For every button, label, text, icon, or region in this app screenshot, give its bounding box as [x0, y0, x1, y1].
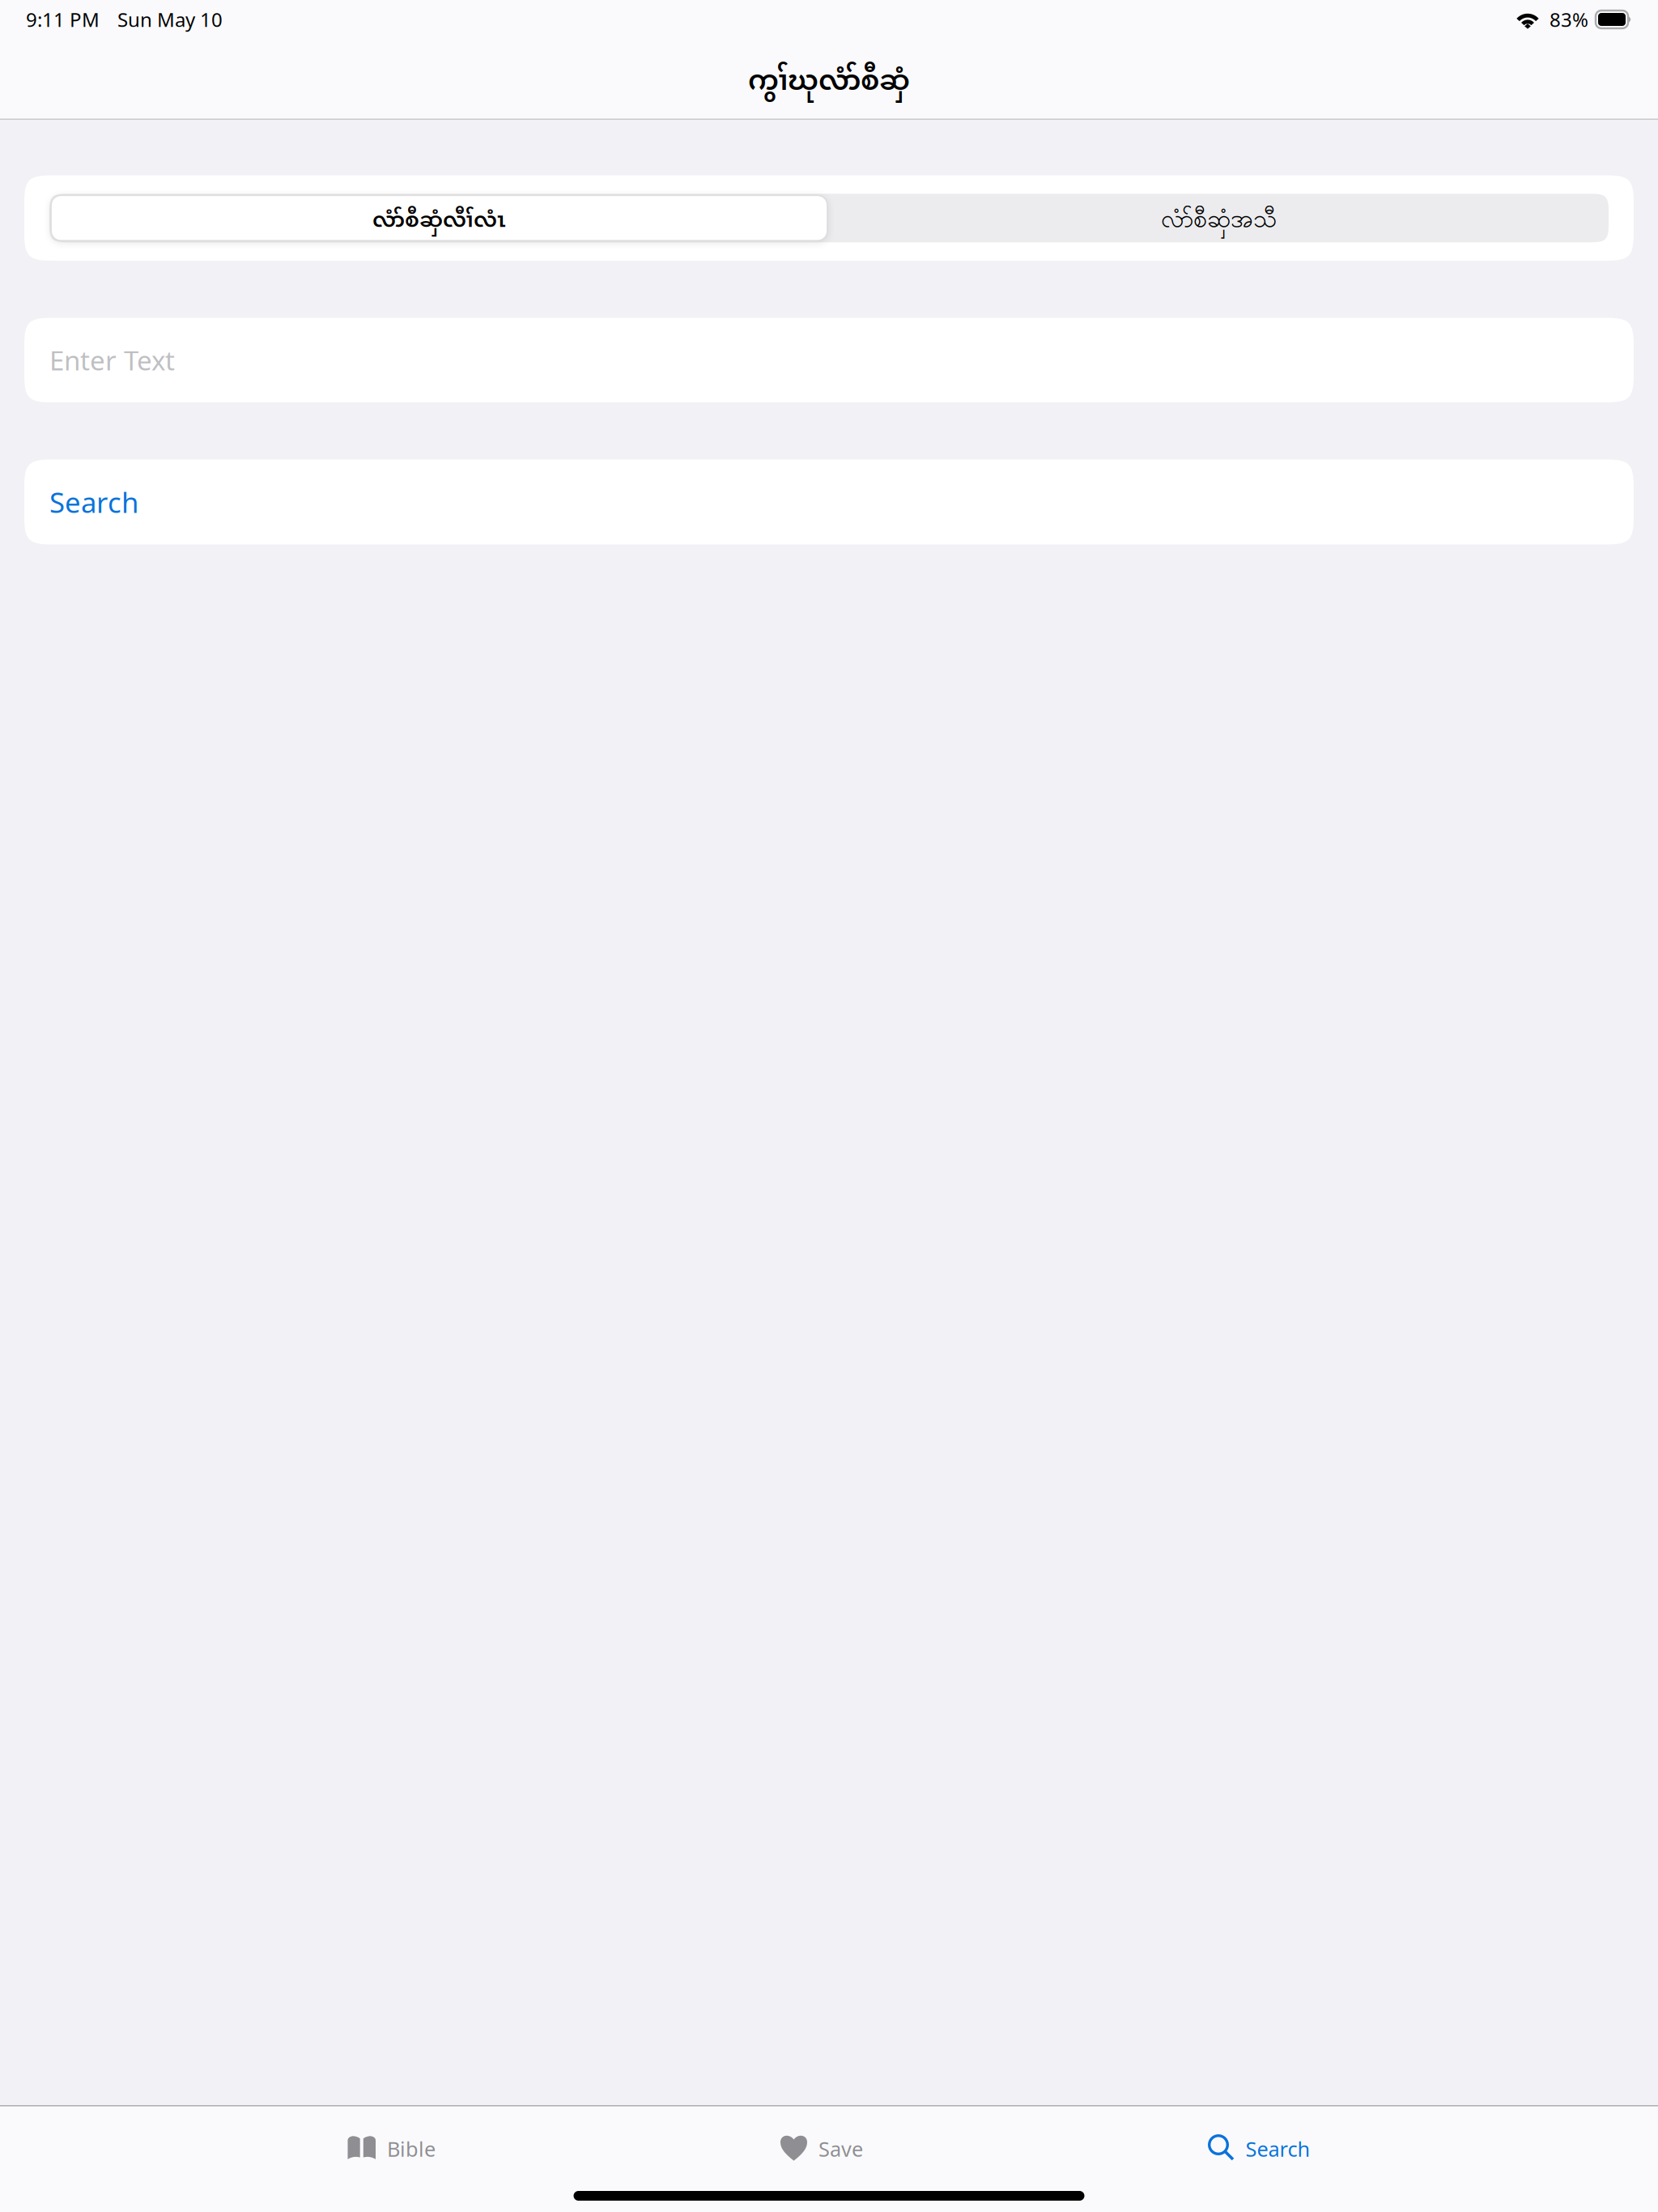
staticText: Sun May 10 [117, 7, 223, 32]
staticText: Search [49, 483, 138, 521]
button[interactable]: Search [0, 459, 1658, 544]
button[interactable]: လံာ်စီဆှံအသီ [829, 194, 1609, 242]
staticText: Bible [387, 2135, 436, 2162]
staticText: Save [818, 2135, 863, 2162]
staticText: 9:11 PM [26, 7, 100, 32]
button[interactable]: လံာ်စီဆှံလီၢ်လံၤ [49, 194, 829, 242]
staticText: လံာ်စီဆှံလီၢ်လံၤ [372, 200, 506, 245]
staticText: လံာ်စီဆှံအသီ [1161, 204, 1277, 239]
staticText: Enter Text [49, 342, 175, 378]
button[interactable]: Save [764, 2118, 879, 2176]
button[interactable]: Enter Text [0, 318, 1658, 402]
staticText: ကွၢ်ဃုလံာ်စီဆှံ [748, 54, 910, 113]
staticText: 83% [1550, 7, 1588, 32]
button[interactable]: Bible [332, 2118, 452, 2176]
staticText: Search [1246, 2135, 1310, 2162]
button[interactable]: Search [1192, 2118, 1326, 2176]
